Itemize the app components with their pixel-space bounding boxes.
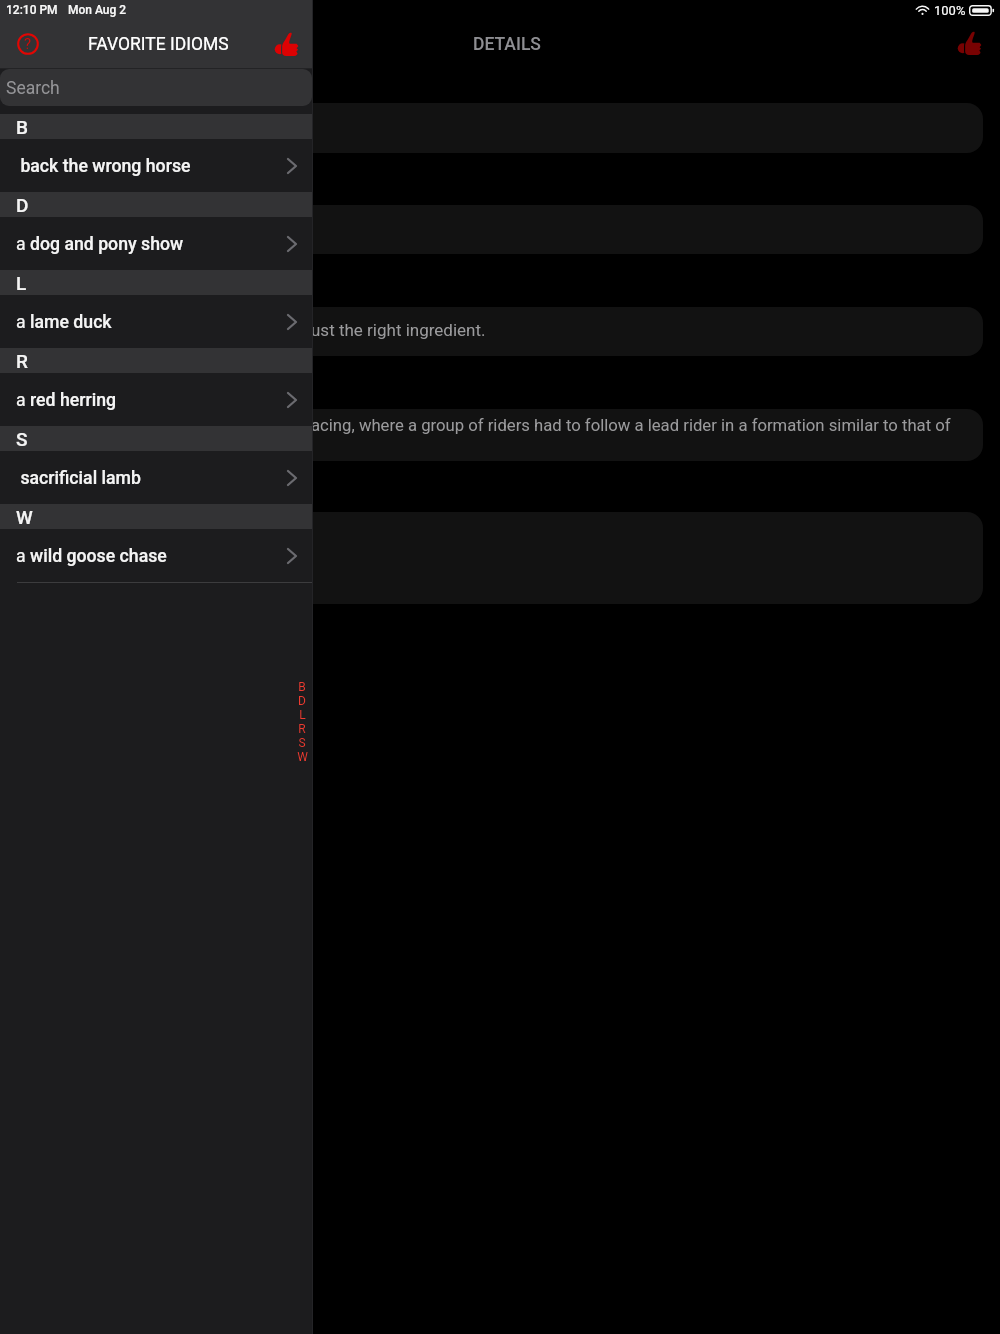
staticText: L — [299, 708, 306, 722]
button[interactable] — [0, 103, 983, 153]
staticText: S — [16, 428, 28, 450]
button[interactable]: Favorite — [954, 27, 987, 60]
staticText: R — [16, 350, 28, 372]
staticText: Search — [6, 78, 60, 99]
button[interactable]: sacrificial lamb — [0, 451, 313, 504]
button[interactable]: ust the right ingredient. — [0, 307, 983, 356]
button[interactable]: Jump to section L — [295, 708, 309, 722]
button[interactable]: Favorites — [271, 28, 304, 61]
staticText: DETAILS — [473, 34, 541, 55]
staticText: L — [16, 272, 27, 294]
button[interactable] — [0, 512, 983, 604]
button[interactable]: Jump to section R — [295, 722, 309, 736]
staticText: W — [297, 750, 308, 764]
staticText: W — [16, 506, 33, 528]
staticText: ust the right ingredient. — [311, 320, 486, 340]
staticText: B — [16, 116, 28, 138]
button[interactable]: Jump to section W — [295, 750, 309, 764]
staticText: D — [16, 194, 29, 216]
button[interactable]: acing, where a group of riders had to fo… — [0, 409, 983, 461]
staticText: S — [298, 736, 306, 750]
staticText: 12:10 PM — [6, 3, 58, 17]
button[interactable]: a lame duck — [0, 295, 313, 348]
staticText: D — [298, 694, 306, 708]
staticText: Mon Aug 2 — [68, 3, 127, 17]
button[interactable]: Jump to section B — [295, 680, 309, 694]
staticText: a dog and pony show — [16, 234, 184, 255]
staticText: ? — [24, 35, 32, 53]
button[interactable]: Jump to section S — [295, 736, 309, 750]
staticText: a red herring — [16, 390, 117, 411]
staticText: 100% — [934, 3, 966, 18]
button[interactable] — [0, 205, 983, 254]
button[interactable]: a wild goose chase — [0, 529, 313, 582]
button[interactable]: Jump to section D — [295, 694, 309, 708]
staticText: sacrificial lamb — [16, 468, 141, 489]
button[interactable]: back the wrong horse — [0, 139, 313, 192]
button[interactable]: a dog and pony show — [0, 217, 313, 270]
staticText: R — [298, 722, 306, 736]
staticText: a lame duck — [16, 312, 112, 333]
staticText: back the wrong horse — [16, 156, 191, 177]
staticText: FAVORITE IDIOMS — [88, 34, 229, 55]
staticText: B — [298, 680, 306, 694]
button[interactable]: a red herring — [0, 373, 313, 426]
staticText: acing, where a group of riders had to fo… — [311, 416, 951, 436]
button[interactable]: Search — [0, 69, 312, 106]
button[interactable]: Help — [14, 30, 42, 58]
staticText: a wild goose chase — [16, 546, 167, 567]
